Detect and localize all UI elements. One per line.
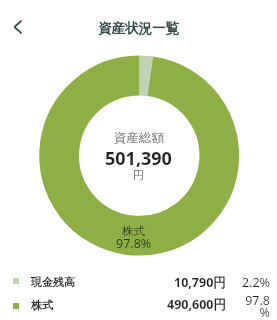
staticText: 株式	[122, 224, 145, 238]
staticText: 円	[133, 168, 144, 182]
staticText: 資産総額	[114, 130, 164, 146]
button[interactable]: 株式	[0, 292, 277, 317]
staticText: 現金残高	[31, 275, 75, 289]
staticText: 97.8%	[241, 292, 270, 317]
staticText: 490,600円	[167, 296, 226, 313]
button[interactable]: 現金残高	[0, 270, 277, 294]
staticText: 資産状況一覧	[98, 20, 179, 37]
staticText: 10,790円	[174, 274, 226, 291]
staticText: 2.2%	[241, 274, 270, 291]
staticText: 株式	[31, 298, 53, 312]
button[interactable]: Back	[6, 15, 30, 39]
staticText: 97.8%	[116, 235, 152, 252]
staticText: 501,390	[105, 146, 172, 171]
